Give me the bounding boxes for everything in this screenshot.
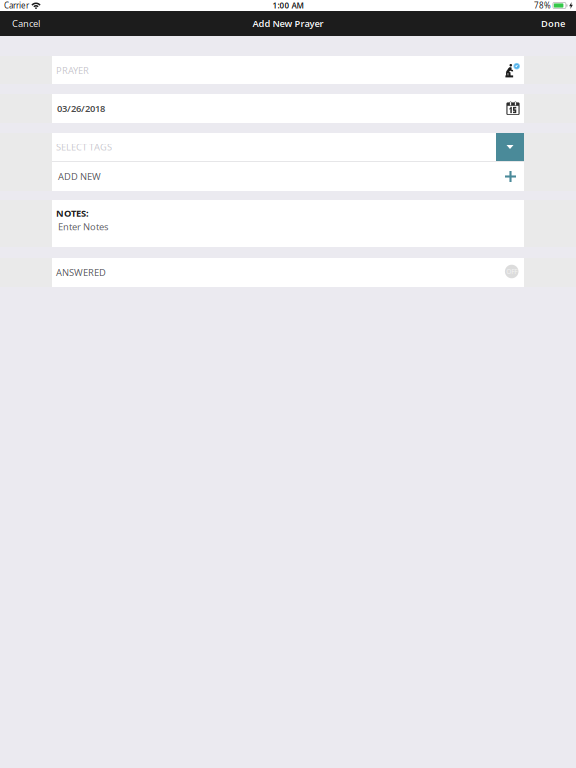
staticText: Cancel — [12, 17, 40, 30]
button[interactable]: NOTES: — [52, 200, 524, 247]
staticText: ANSWERED — [56, 266, 106, 279]
staticText: 1:00 AM — [272, 0, 303, 11]
staticText: NOTES: — [56, 207, 89, 219]
staticText: 03/26/2018 — [57, 102, 105, 115]
staticText: PRAYER — [56, 64, 89, 77]
button[interactable]: 03/26/2018 — [52, 94, 524, 123]
button[interactable]: Done — [531, 11, 576, 36]
button[interactable]: PRAYER — [52, 56, 524, 84]
button[interactable]: Select tags — [52, 133, 524, 161]
button[interactable]: ADD NEW — [52, 162, 524, 191]
staticText: OFF — [506, 267, 517, 276]
staticText: Done — [541, 17, 565, 30]
staticText: 78% — [534, 0, 551, 11]
button[interactable]: Cancel — [0, 11, 50, 36]
staticText: ADD NEW — [58, 170, 101, 183]
button[interactable]: ANSWERED — [52, 258, 524, 287]
staticText: Add New Prayer — [252, 17, 323, 30]
staticText: Carrier — [4, 0, 29, 11]
staticText: SELECT TAGS — [56, 141, 112, 153]
staticText: Enter Notes — [58, 220, 108, 233]
